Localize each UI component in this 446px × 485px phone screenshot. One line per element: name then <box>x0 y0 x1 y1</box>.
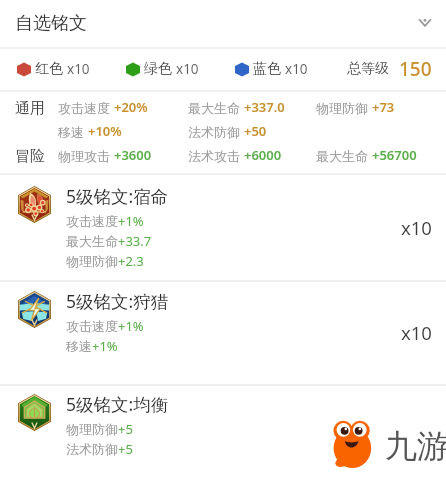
staticText: +1% <box>118 212 144 230</box>
staticText: 150 <box>399 56 432 82</box>
staticText: x10 <box>401 215 432 240</box>
staticText: 法术攻击 <box>188 148 240 164</box>
staticText: 移速 <box>66 338 92 354</box>
staticText: +56700 <box>372 146 417 164</box>
staticText: 通用 <box>15 99 45 118</box>
button[interactable]: 展开 <box>410 9 440 39</box>
staticText: 自选铭文 <box>15 12 87 35</box>
staticText: +73 <box>372 98 395 116</box>
staticText: 法术防御 <box>66 441 118 457</box>
staticText: x10 <box>176 60 199 78</box>
button[interactable]: 自选铭文 <box>0 0 446 47</box>
staticText: 红色 <box>35 60 63 78</box>
staticText: +2.3 <box>118 252 144 270</box>
staticText: +1% <box>92 337 118 355</box>
staticText: x10 <box>285 60 308 78</box>
staticText: 九游 <box>385 426 446 466</box>
staticText: 攻击速度 <box>66 213 118 229</box>
staticText: 5级铭文:均衡 <box>66 392 169 416</box>
staticText: x10 <box>67 60 90 78</box>
staticText: 最大生命 <box>188 100 240 116</box>
staticText: +337.0 <box>244 98 285 116</box>
staticText: 冒险 <box>15 147 45 166</box>
staticText: 5级铭文:宿命 <box>66 184 169 208</box>
staticText: 法术防御 <box>188 124 240 140</box>
staticText: 蓝色 <box>253 60 281 78</box>
staticText: 物理防御 <box>316 100 368 116</box>
button[interactable]: 5级铭文:宿命 <box>0 174 446 280</box>
button[interactable]: 5级铭文:狩猎 <box>0 281 446 384</box>
staticText: 5级铭文:狩猎 <box>66 289 169 313</box>
staticText: 最大生命 <box>316 148 368 164</box>
staticText: +5 <box>118 440 133 458</box>
staticText: 最大生命 <box>66 233 118 249</box>
staticText: +3600 <box>114 146 152 164</box>
staticText: 攻击速度 <box>66 318 118 334</box>
staticText: +50 <box>244 122 267 140</box>
staticText: +5 <box>118 420 133 438</box>
staticText: x10 <box>401 320 432 345</box>
staticText: 绿色 <box>144 60 172 78</box>
staticText: +6000 <box>244 146 282 164</box>
staticText: +20% <box>114 98 148 116</box>
staticText: +33.7 <box>118 232 152 250</box>
staticText: +1% <box>118 317 144 335</box>
staticText: 物理防御 <box>66 253 118 269</box>
staticText: 攻击速度 <box>58 100 110 116</box>
staticText: 移速 <box>58 124 84 140</box>
staticText: 物理防御 <box>66 421 118 437</box>
staticText: 总等级 <box>347 60 389 78</box>
staticText: +10% <box>88 122 122 140</box>
button[interactable]: 5级铭文:均衡 <box>0 385 446 485</box>
staticText: 物理攻击 <box>58 148 110 164</box>
